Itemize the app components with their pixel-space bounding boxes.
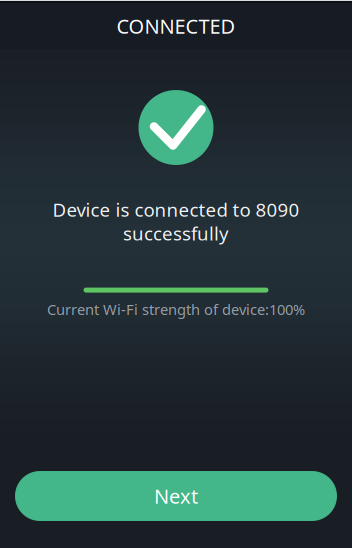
staticText: Device is connected to 8090	[52, 197, 299, 222]
staticText: successfully	[123, 221, 229, 246]
button[interactable]: Next	[15, 471, 337, 521]
staticText: Next	[154, 483, 198, 509]
staticText: Current Wi-Fi strength of device:100%	[47, 300, 305, 319]
staticText: CONNECTED	[116, 13, 235, 39]
